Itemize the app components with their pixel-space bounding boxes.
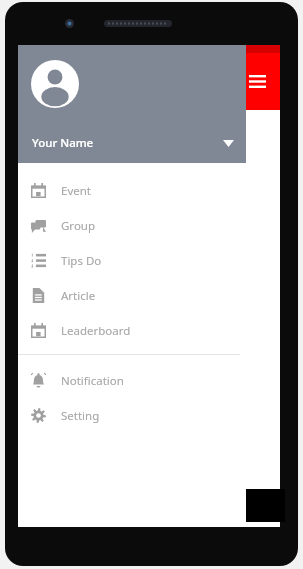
other: Expand account list [223,140,234,147]
staticText: Article [61,288,96,304]
button[interactable]: Event [18,173,246,208]
staticText: Tips Do [61,253,102,269]
staticText: Leaderboard [61,323,131,339]
button[interactable]: Group [18,208,246,243]
button[interactable]: Article [18,278,246,313]
button[interactable]: Tips Do [18,243,246,278]
button[interactable]: Setting [18,398,246,433]
staticText: Your Name [32,135,94,151]
staticText: Event [61,183,91,199]
button[interactable]: Open navigation menu [240,53,280,110]
button[interactable]: Your Name [18,45,246,163]
button[interactable]: Leaderboard [18,313,246,348]
staticText: Group [61,218,96,234]
staticText: Notification [61,373,124,389]
staticText: Setting [61,408,100,424]
button[interactable]: Notification [18,363,246,398]
